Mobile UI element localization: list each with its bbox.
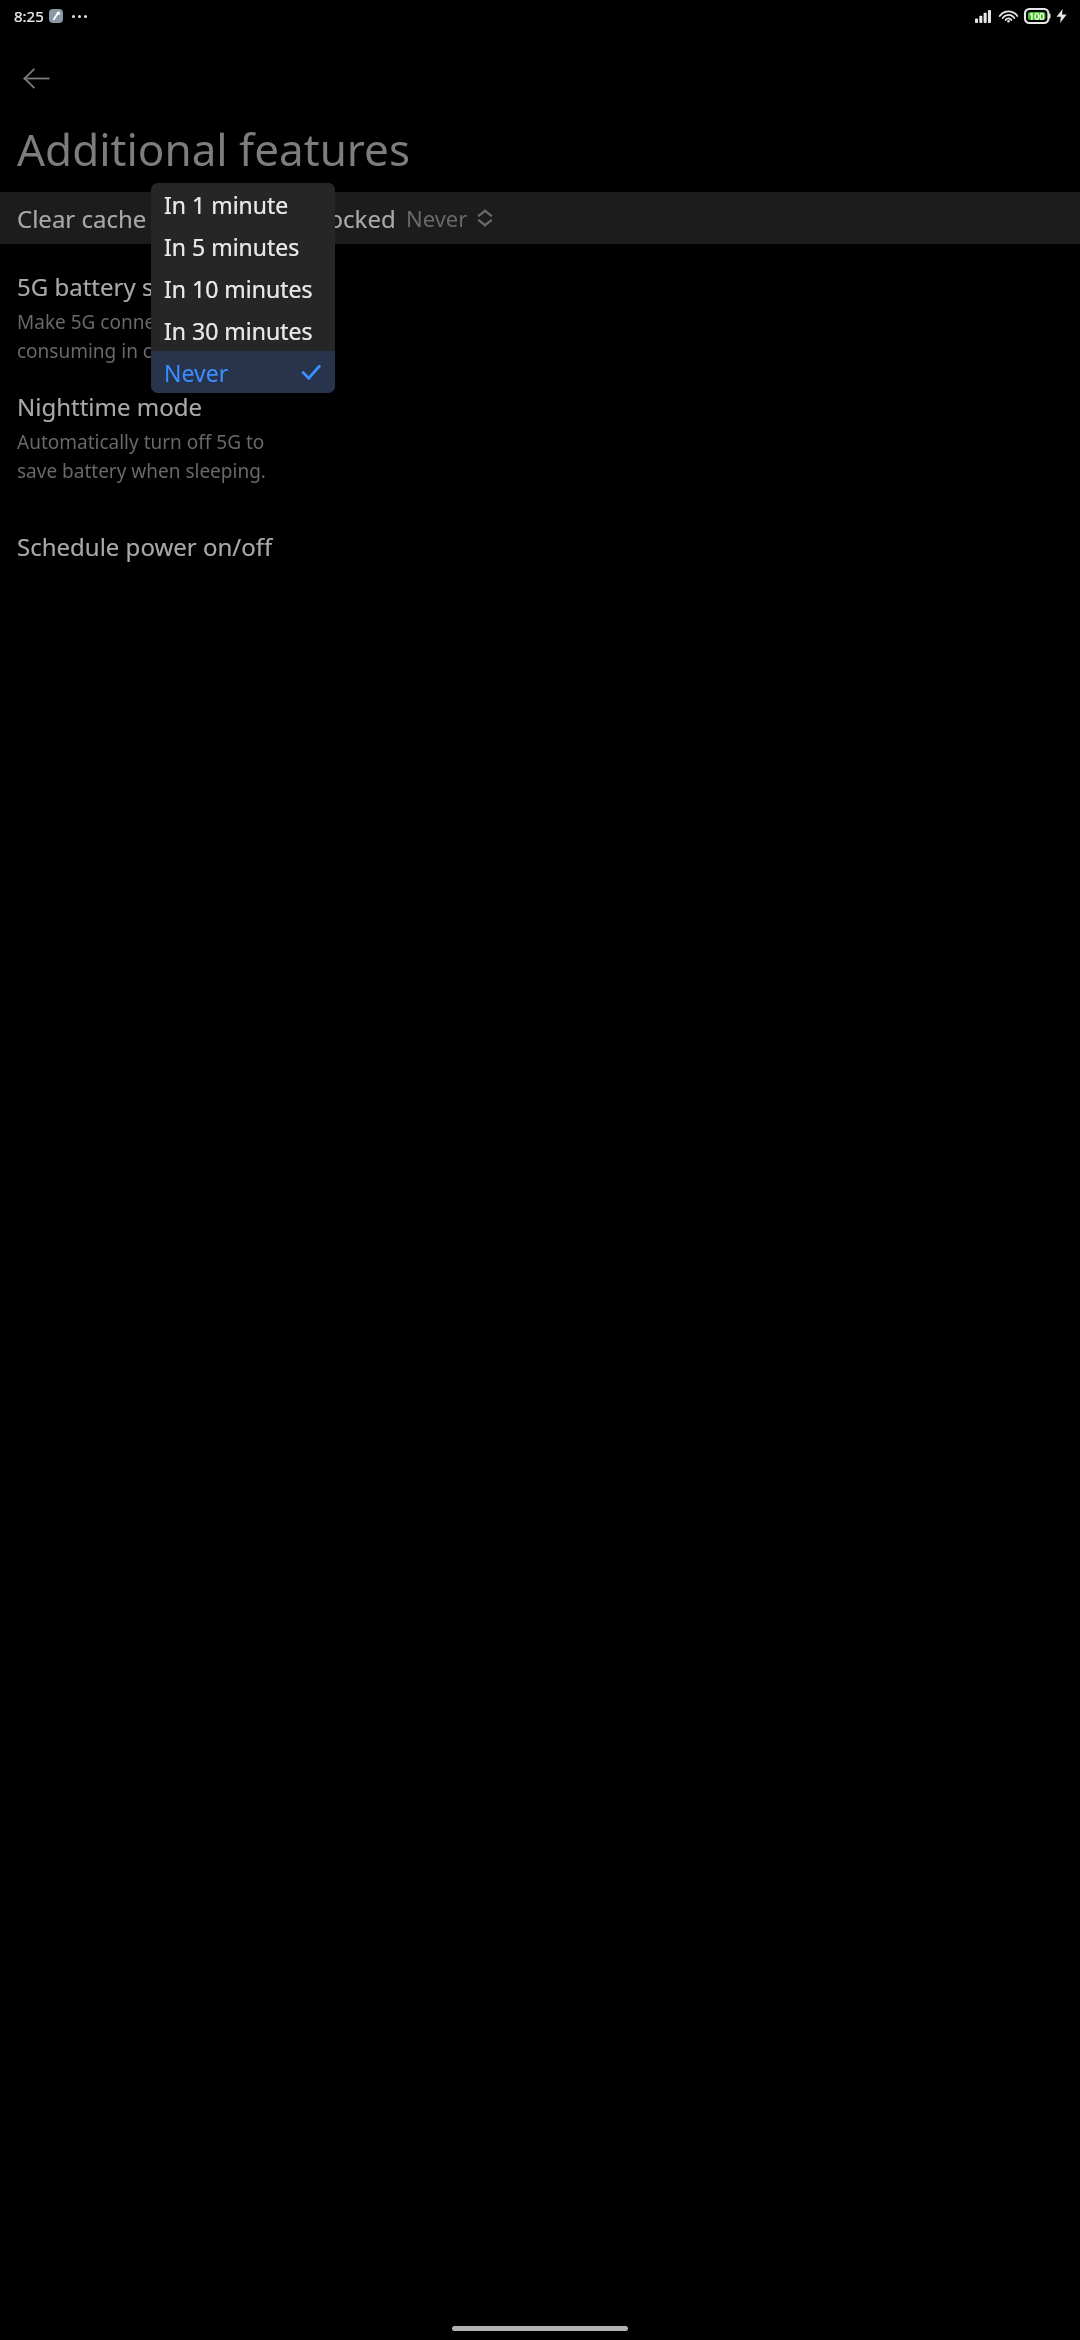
staticText: 5G battery saver [17, 270, 203, 303]
button[interactable]: In 5 minutes [151, 225, 335, 267]
staticText: In 1 minute [164, 189, 289, 220]
staticText: Clear cache when device is locked [17, 202, 396, 235]
button[interactable]: Schedule power on/off [0, 514, 1080, 578]
button[interactable]: Clear cache when device is locked [0, 192, 1080, 244]
staticText: Additional features [17, 119, 411, 179]
staticText: In 10 minutes [164, 273, 313, 304]
staticText: 8:25 [14, 6, 44, 26]
button[interactable]: 5G battery saver [0, 270, 1080, 364]
staticText: Never [164, 357, 229, 388]
button[interactable]: In 1 minute [151, 183, 335, 225]
button[interactable]: Back [8, 50, 64, 106]
button[interactable]: In 10 minutes [151, 267, 335, 309]
staticText: In 30 minutes [164, 315, 313, 346]
staticText: Schedule power on/off [17, 530, 273, 563]
staticText: Make 5G connectivity less power [17, 309, 308, 335]
staticText: In 5 minutes [164, 231, 300, 262]
staticText: Nighttime mode [17, 390, 203, 423]
staticText: consuming in certain scenarios. [17, 338, 300, 364]
staticText: Automatically turn off 5G to [17, 429, 265, 455]
staticText: Never [406, 203, 468, 233]
button[interactable]: Never [151, 351, 335, 393]
button[interactable]: Nighttime mode [0, 390, 1080, 484]
staticText: save battery when sleeping. [17, 458, 266, 484]
staticText: 100 [1029, 10, 1045, 22]
button[interactable]: In 30 minutes [151, 309, 335, 351]
